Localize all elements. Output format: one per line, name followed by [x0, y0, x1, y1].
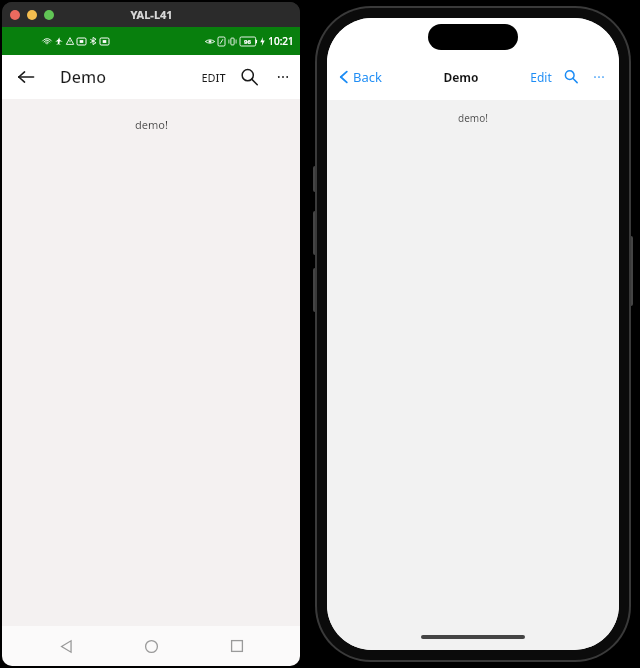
- staticText: Edit: [530, 69, 552, 85]
- staticText: 10:21: [268, 34, 294, 48]
- staticText: Demo: [60, 66, 106, 88]
- button[interactable]: Zoom: [44, 10, 54, 20]
- button[interactable]: Home: [129, 626, 173, 666]
- button[interactable]: Minimize: [27, 10, 37, 20]
- button[interactable]: EDIT: [195, 55, 232, 99]
- staticText: 96: [244, 38, 251, 46]
- staticText: demo!: [135, 117, 168, 132]
- button[interactable]: Back: [10, 61, 42, 93]
- button[interactable]: Edit: [525, 62, 557, 92]
- staticText: Back: [353, 68, 382, 86]
- staticText: Demo: [443, 69, 479, 85]
- button[interactable]: Close: [10, 10, 20, 20]
- staticText: YAL-L41: [130, 7, 173, 22]
- staticText: EDIT: [201, 70, 226, 85]
- button[interactable]: Back: [339, 68, 382, 86]
- button[interactable]: More options: [266, 55, 300, 99]
- button[interactable]: Recent apps: [215, 626, 259, 666]
- button[interactable]: Search: [232, 55, 266, 99]
- button[interactable]: More options: [585, 62, 613, 92]
- button[interactable]: Search: [557, 62, 585, 92]
- button[interactable]: Back: [44, 626, 88, 666]
- staticText: demo!: [458, 111, 488, 125]
